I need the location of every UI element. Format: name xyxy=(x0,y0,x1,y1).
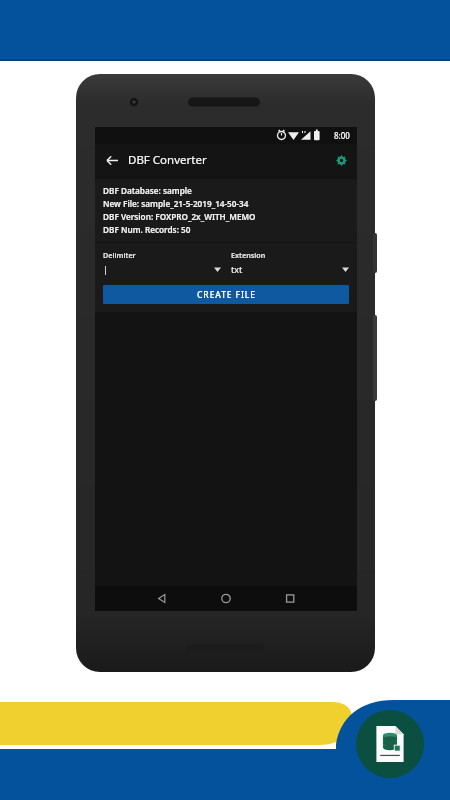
staticText: DBF Converter xyxy=(128,152,207,168)
button[interactable]: DBF Convert app icon xyxy=(356,710,424,778)
staticText: 8:00 xyxy=(334,130,350,141)
staticText: Extension xyxy=(231,250,266,260)
button[interactable]: Delimiter xyxy=(103,250,221,277)
button[interactable]: CREATE FILE xyxy=(103,285,349,304)
button[interactable]: Settings xyxy=(330,149,352,171)
staticText: Delimiter xyxy=(103,250,136,260)
staticText: CREATE FILE xyxy=(197,289,256,301)
staticText: txt xyxy=(231,263,243,275)
staticText: New File: sample_21-5-2019_14-50-34 xyxy=(103,198,249,209)
staticText: | xyxy=(103,263,108,275)
button[interactable]: Back xyxy=(101,149,123,171)
staticText: DBF Num. Records: 50 xyxy=(103,224,191,235)
button[interactable]: Extension xyxy=(231,250,349,277)
staticText: DBF Version: FOXPRO_2x_WITH_MEMO xyxy=(103,211,256,222)
staticText: DBF Database: sample xyxy=(103,185,192,196)
